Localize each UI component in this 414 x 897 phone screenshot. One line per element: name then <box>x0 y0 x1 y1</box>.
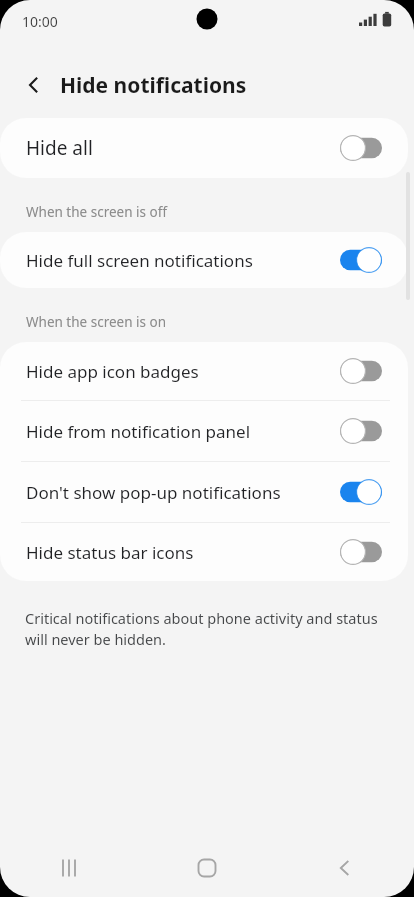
button[interactable]: Recent apps <box>0 839 138 897</box>
button[interactable]: Hide status bar icons <box>0 523 408 581</box>
button[interactable]: Don't show pop-up notifications <box>0 462 408 522</box>
button[interactable]: Hide all <box>0 118 408 178</box>
button[interactable]: On <box>340 479 382 505</box>
button[interactable]: Hide from notification panel <box>0 401 408 461</box>
button[interactable]: Back <box>14 65 54 105</box>
staticText: Critical notifications about phone activ… <box>25 608 378 650</box>
staticText: Hide app icon badges <box>26 360 340 383</box>
staticText: Hide status bar icons <box>26 541 340 564</box>
staticText: 10:00 <box>22 12 58 31</box>
button[interactable]: Home <box>138 839 276 897</box>
staticText: Hide notifications <box>60 71 247 100</box>
staticText: Don't show pop-up notifications <box>26 481 340 504</box>
button[interactable]: Hide full screen notifications <box>0 232 408 288</box>
button[interactable]: Off <box>340 539 382 565</box>
staticText: When the screen is on <box>26 313 167 331</box>
staticText: Hide from notification panel <box>26 420 340 443</box>
staticText: Hide full screen notifications <box>26 249 340 272</box>
button[interactable]: Hide app icon badges <box>0 342 408 400</box>
button[interactable]: Back <box>276 839 414 897</box>
button[interactable]: Off <box>340 358 382 384</box>
button[interactable]: On <box>340 247 382 273</box>
staticText: When the screen is off <box>26 203 167 221</box>
button[interactable]: Off <box>340 135 382 161</box>
staticText: Hide all <box>26 135 340 161</box>
button[interactable]: Off <box>340 418 382 444</box>
